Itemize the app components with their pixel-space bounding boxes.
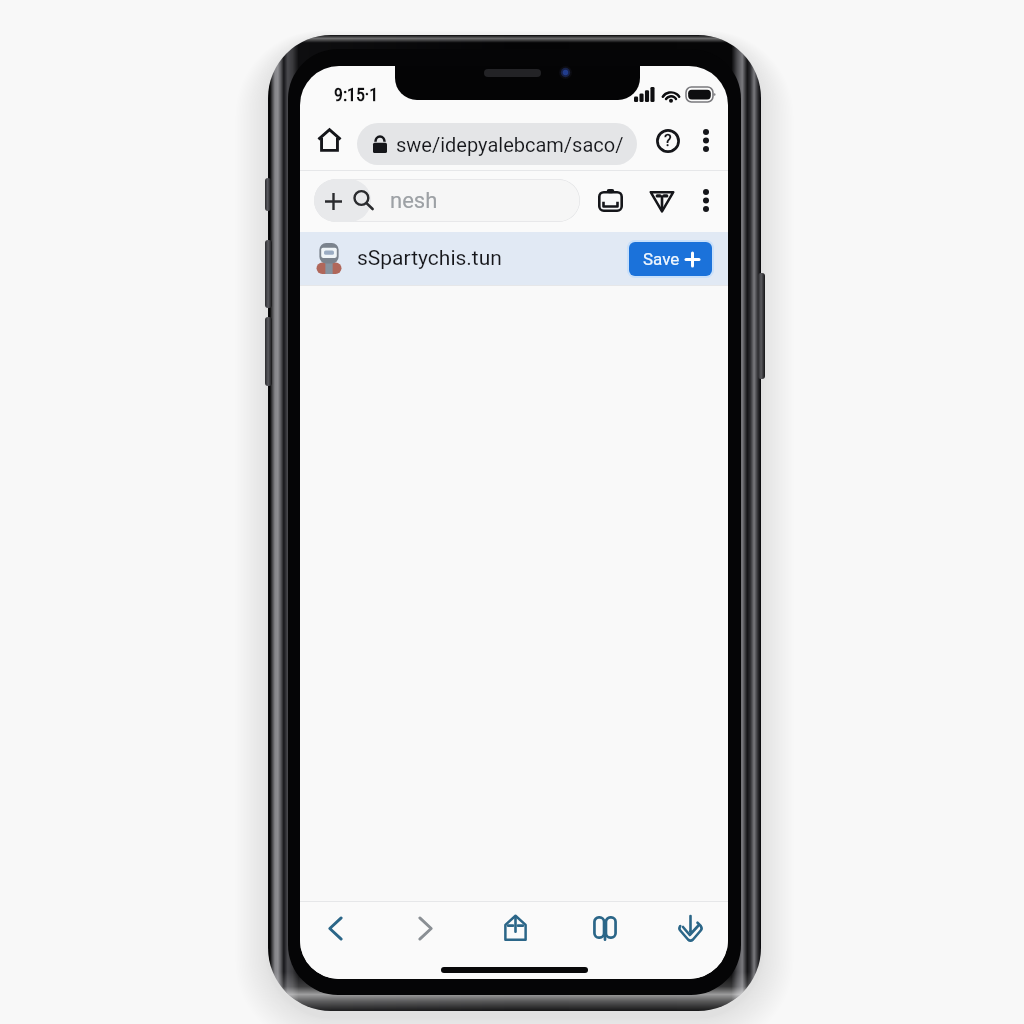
button[interactable]: Back [313,906,357,950]
button[interactable]: Forward [403,906,447,950]
button[interactable]: Bookmarks [583,906,627,950]
button[interactable]: sSpartychis.tun [300,232,728,285]
button[interactable]: Filter [641,180,683,222]
button[interactable]: nesh [314,179,580,222]
button[interactable]: Share [493,906,537,950]
staticText: 9:15·1 [334,84,379,105]
button[interactable]: More options [688,182,724,218]
button[interactable]: Save [629,242,712,276]
button[interactable]: Home [308,119,350,161]
staticText: sSpartychis.tun [357,246,672,271]
button[interactable]: Downloads [668,906,712,950]
staticText: Save [643,249,680,269]
staticText: swe/idepyalebcam/saco/ [396,133,624,156]
staticText: ? [664,131,672,150]
staticText: nesh [390,188,438,214]
button[interactable]: Tabs [589,179,631,221]
button[interactable]: More options [688,122,724,158]
button[interactable]: swe/idepyalebcam/saco/ [357,123,637,165]
button[interactable]: Help [648,121,688,161]
